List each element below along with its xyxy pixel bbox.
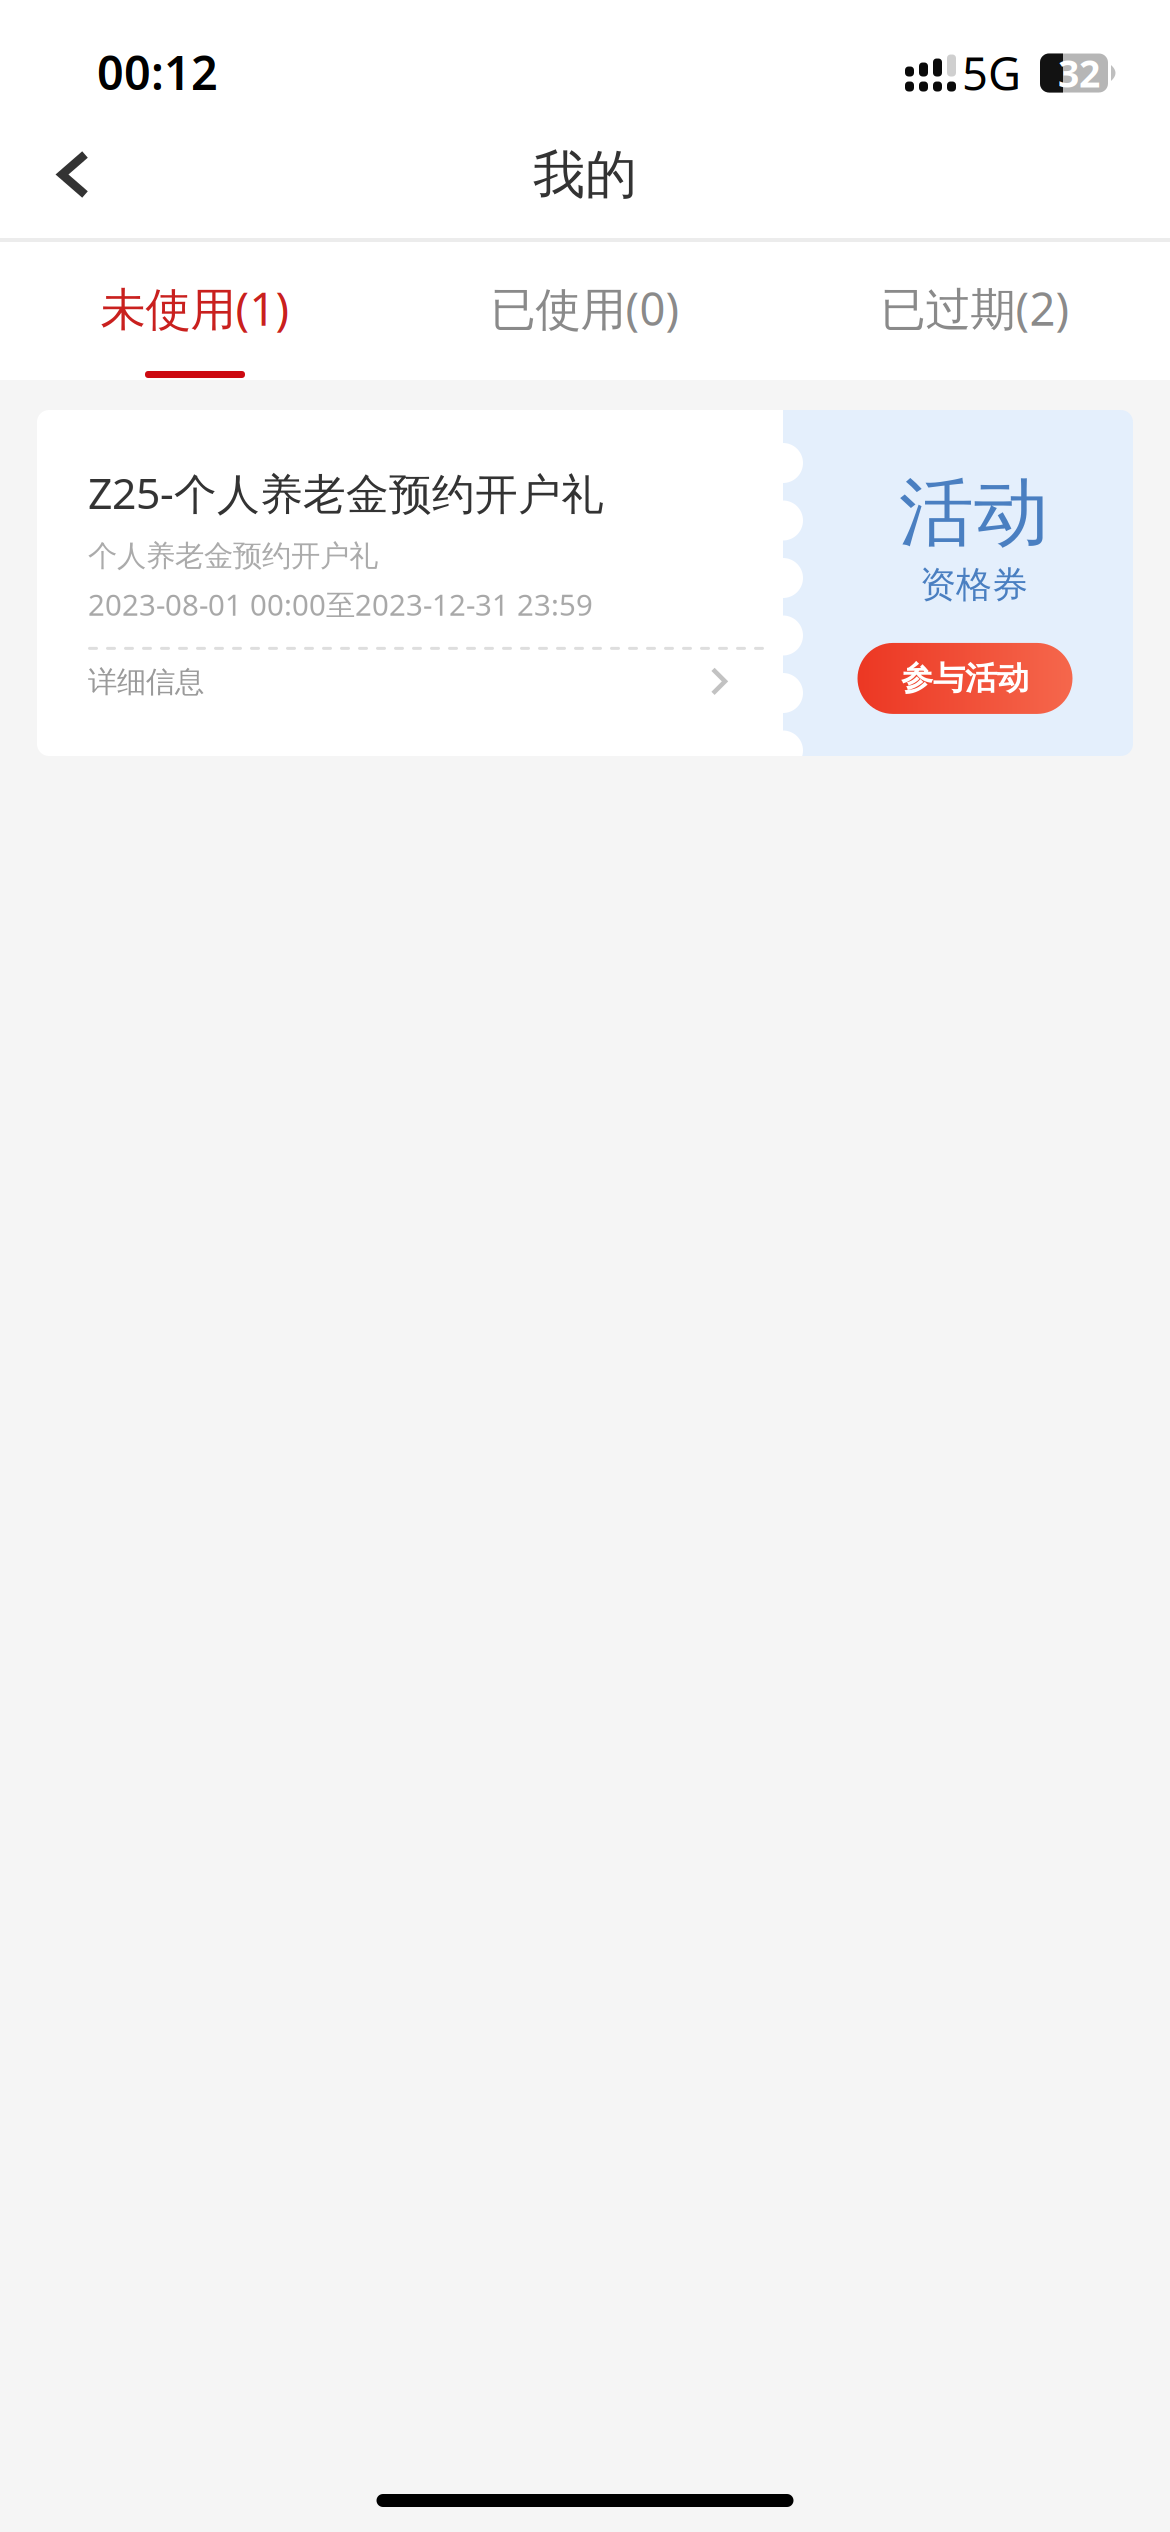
button[interactable]: 未使用(1) (0, 242, 390, 380)
staticText: 已过期(2) (880, 278, 1069, 338)
button[interactable]: 详细信息 (88, 654, 783, 710)
button[interactable]: 参与活动 (857, 643, 1072, 714)
button[interactable]: Back (16, 114, 132, 235)
button[interactable]: 已使用(0) (390, 242, 780, 380)
button[interactable]: 已过期(2) (780, 242, 1170, 380)
staticText: 已使用(0) (490, 278, 679, 338)
staticText: 活动 (899, 467, 1049, 559)
staticText: 资格券 (920, 563, 1028, 607)
staticText: 32 (1058, 48, 1100, 98)
staticText: 我的 (533, 143, 637, 207)
staticText: 个人养老金预约开户礼 (88, 538, 378, 574)
staticText: 参与活动 (901, 659, 1029, 698)
staticText: 未使用(1) (100, 278, 289, 338)
staticText: 2023-08-01 00:00至2023-12-31 23:59 (88, 585, 593, 624)
staticText: Z25-个人养老金预约开户礼 (88, 464, 604, 521)
staticText: 00:12 (97, 41, 218, 103)
staticText: 5G (962, 43, 1021, 103)
staticText: 详细信息 (88, 664, 204, 700)
